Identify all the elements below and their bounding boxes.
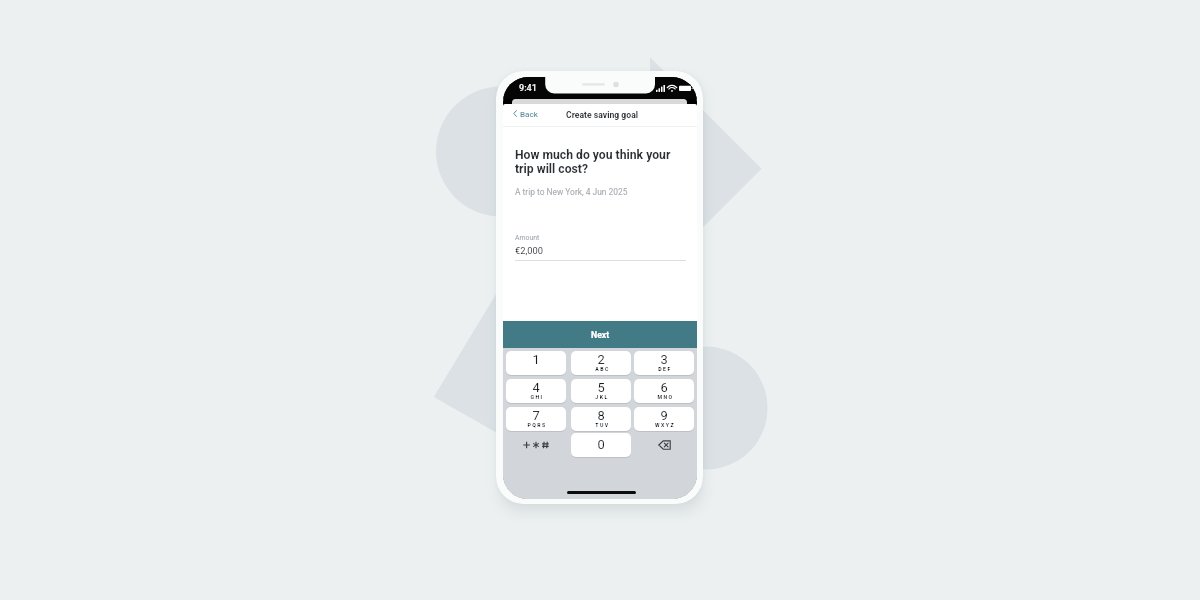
staticText: Amount <box>515 234 540 242</box>
staticText: Create saving goal <box>566 110 639 120</box>
staticText: 2 <box>597 352 605 367</box>
staticText: PQRS <box>527 422 547 428</box>
button[interactable]: Back <box>510 106 543 121</box>
button[interactable]: Symbols plus asterisk hash <box>506 433 566 457</box>
staticText: TUV <box>595 422 610 428</box>
staticText: 9:41 <box>519 83 537 94</box>
staticText: How much do you think your trip will cos… <box>515 148 671 176</box>
staticText: 6 <box>660 380 668 395</box>
button[interactable]: 7 <box>506 407 566 431</box>
staticText: 0 <box>597 437 605 452</box>
button[interactable]: 0 <box>571 433 631 457</box>
staticText: DEF <box>658 366 672 372</box>
button[interactable]: Backspace <box>634 433 694 457</box>
button[interactable]: 1 <box>506 351 566 375</box>
staticText: JKL <box>595 394 609 400</box>
staticText: MNO <box>657 394 674 400</box>
staticText: 1 <box>532 352 540 367</box>
button[interactable]: 6 <box>634 379 694 403</box>
staticText: 5 <box>597 380 605 395</box>
staticText: 9 <box>660 408 668 423</box>
button[interactable]: 5 <box>571 379 631 403</box>
staticText: 8 <box>597 408 605 423</box>
button[interactable]: Next <box>503 321 697 349</box>
staticText: Back <box>520 109 538 118</box>
staticText: 4 <box>532 380 540 395</box>
staticText: 3 <box>660 352 668 367</box>
button[interactable]: 9 <box>634 407 694 431</box>
staticText: GHI <box>530 394 544 400</box>
button[interactable]: 4 <box>506 379 566 403</box>
button[interactable]: 2 <box>571 351 631 375</box>
staticText: €2,000 <box>515 245 543 256</box>
staticText: ABC <box>595 366 610 372</box>
button[interactable]: 8 <box>571 407 631 431</box>
staticText: A trip to New York, 4 Jun 2025 <box>515 187 628 197</box>
button[interactable]: 3 <box>634 351 694 375</box>
staticText: Next <box>591 330 610 340</box>
staticText: 7 <box>532 408 540 423</box>
staticText: WXYZ <box>655 422 675 428</box>
